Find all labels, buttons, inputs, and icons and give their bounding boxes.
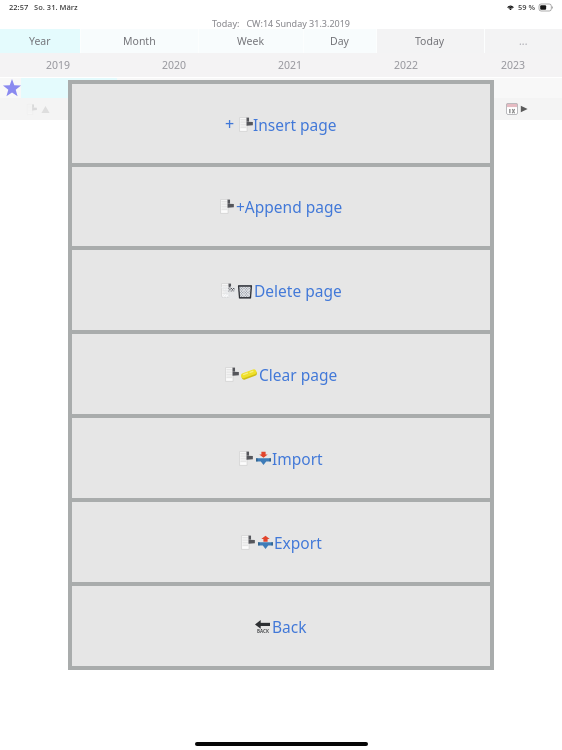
button[interactable]: Month xyxy=(80,29,198,53)
button[interactable]: 2020 xyxy=(116,53,232,77)
staticText: +Append page xyxy=(236,196,343,217)
staticText: 22:57 So. 31. März xyxy=(9,2,78,12)
button[interactable]: +Append page xyxy=(72,167,490,246)
staticText: 2022 xyxy=(394,58,419,72)
staticText: Back xyxy=(272,616,307,637)
staticText: Today xyxy=(415,34,445,48)
staticText: Week xyxy=(237,34,265,48)
button[interactable]: Clear page xyxy=(72,334,490,414)
button[interactable]: Week xyxy=(198,29,303,53)
button[interactable]: Import xyxy=(72,418,490,498)
button[interactable]: Today xyxy=(376,29,484,53)
button[interactable]: Day xyxy=(303,29,376,53)
staticText: Clear page xyxy=(259,364,338,385)
button[interactable]: Export xyxy=(72,502,490,582)
staticText: + xyxy=(225,113,235,135)
button[interactable]: 2023 xyxy=(464,53,562,77)
button[interactable]: Delete page xyxy=(72,250,490,330)
staticText: Delete page xyxy=(254,280,342,301)
staticText: Import xyxy=(272,448,323,469)
button[interactable]: BACK xyxy=(72,586,490,666)
staticText: ... xyxy=(519,34,528,48)
staticText: Export xyxy=(274,532,322,553)
staticText: 59 % xyxy=(518,2,536,12)
button[interactable]: 2022 xyxy=(348,53,464,77)
button[interactable]: 2021 xyxy=(232,53,348,77)
staticText: Year xyxy=(29,34,51,48)
staticText: 2021 xyxy=(278,58,303,72)
staticText: 2023 xyxy=(501,58,526,72)
button[interactable]: + xyxy=(72,84,490,163)
staticText: Today: CW:14 Sunday 31.3.2019 xyxy=(212,17,350,29)
button[interactable]: Year xyxy=(0,29,80,53)
staticText: 2020 xyxy=(162,58,187,72)
staticText: Month xyxy=(123,34,156,48)
button[interactable]: 2019 xyxy=(0,53,116,77)
staticText: Insert page xyxy=(253,114,337,135)
staticText: BACK xyxy=(257,628,269,634)
staticText: 2019 xyxy=(46,58,71,72)
staticText: Day xyxy=(330,34,349,48)
